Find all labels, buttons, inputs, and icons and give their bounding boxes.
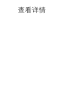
staticText: 查看详情: [18, 6, 46, 14]
